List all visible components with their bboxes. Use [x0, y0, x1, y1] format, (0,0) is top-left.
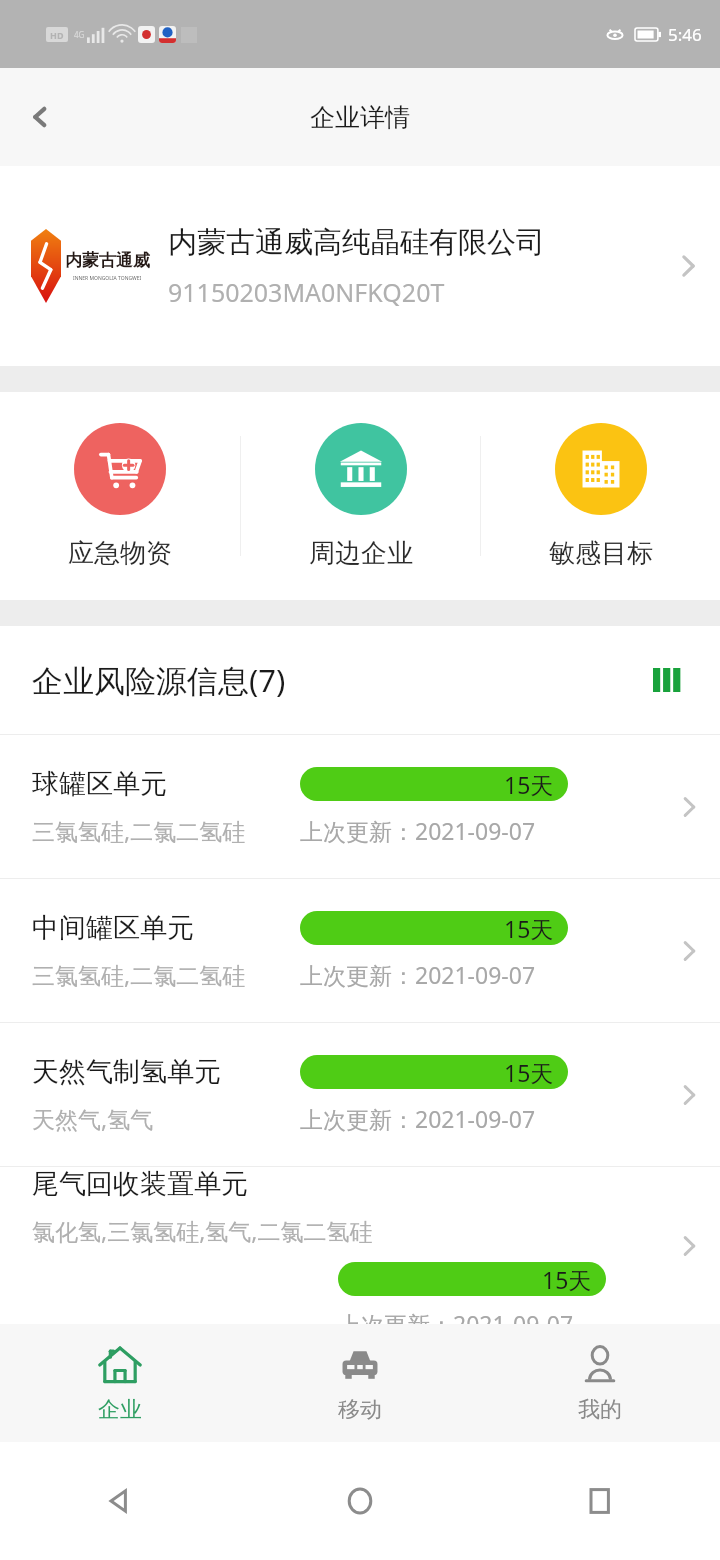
staticText: 三氯氢硅,二氯二氢硅	[32, 959, 246, 990]
staticText: 三氯氢硅,二氯二氢硅	[32, 815, 246, 846]
staticText: 移动	[338, 1396, 382, 1424]
staticText: 中间罐区单元	[32, 911, 194, 945]
staticText: 15天	[504, 1057, 554, 1088]
button[interactable]: 周边企业	[241, 392, 480, 600]
staticText: HD	[50, 29, 64, 41]
button[interactable]: 应急物资	[0, 392, 240, 600]
staticText: 上次更新：2021-09-07	[300, 815, 536, 846]
button[interactable]: 敏感目标	[481, 392, 720, 600]
staticText: 周边企业	[309, 537, 413, 570]
staticText: 天然气制氢单元	[32, 1055, 221, 1089]
staticText: 球罐区单元	[32, 767, 167, 801]
staticText: 5:46	[668, 23, 702, 46]
button[interactable]: Recents	[480, 1442, 720, 1560]
staticText: 尾气回收装置单元	[32, 1167, 248, 1201]
button[interactable]: Home	[240, 1442, 480, 1560]
staticText: 应急物资	[68, 537, 172, 570]
button[interactable]: 中间罐区单元	[0, 879, 720, 1022]
staticText: 敏感目标	[549, 537, 653, 570]
staticText: 上次更新：2021-09-07	[300, 1103, 536, 1134]
staticText: 15天	[504, 913, 554, 944]
staticText: 企业风险源信息(7)	[32, 659, 648, 701]
staticText: 企业详情	[310, 102, 410, 133]
staticText: 上次更新：2021-09-07	[338, 1308, 574, 1324]
button[interactable]: 内蒙古通威	[0, 166, 720, 366]
staticText: 15天	[542, 1264, 592, 1295]
staticText: 氯化氢,三氯氢硅,氢气,二氯二氢硅	[32, 1215, 373, 1246]
button[interactable]: Back	[0, 1442, 240, 1560]
button[interactable]: Chart	[648, 660, 688, 700]
button[interactable]: 移动	[240, 1324, 480, 1442]
staticText: 天然气,氢气	[32, 1103, 154, 1134]
button[interactable]: 天然气制氢单元	[0, 1023, 720, 1166]
staticText: 内蒙古通威高纯晶硅有限公司	[168, 224, 545, 261]
button[interactable]: 尾气回收装置单元	[0, 1167, 720, 1324]
staticText: 4G	[74, 29, 85, 40]
button[interactable]: Back	[8, 85, 72, 149]
staticText: 上次更新：2021-09-07	[300, 959, 536, 990]
button[interactable]: 球罐区单元	[0, 735, 720, 878]
button[interactable]: 企业	[0, 1324, 240, 1442]
staticText: 91150203MA0NFKQ20T	[168, 275, 445, 309]
staticText: 我的	[578, 1396, 622, 1424]
staticText: 企业	[98, 1396, 142, 1424]
staticText: INNER MONGOLIA TONGWEI	[73, 275, 142, 282]
staticText: 15天	[504, 769, 554, 800]
staticText: 内蒙古通威	[65, 250, 150, 271]
button[interactable]: 我的	[480, 1324, 720, 1442]
